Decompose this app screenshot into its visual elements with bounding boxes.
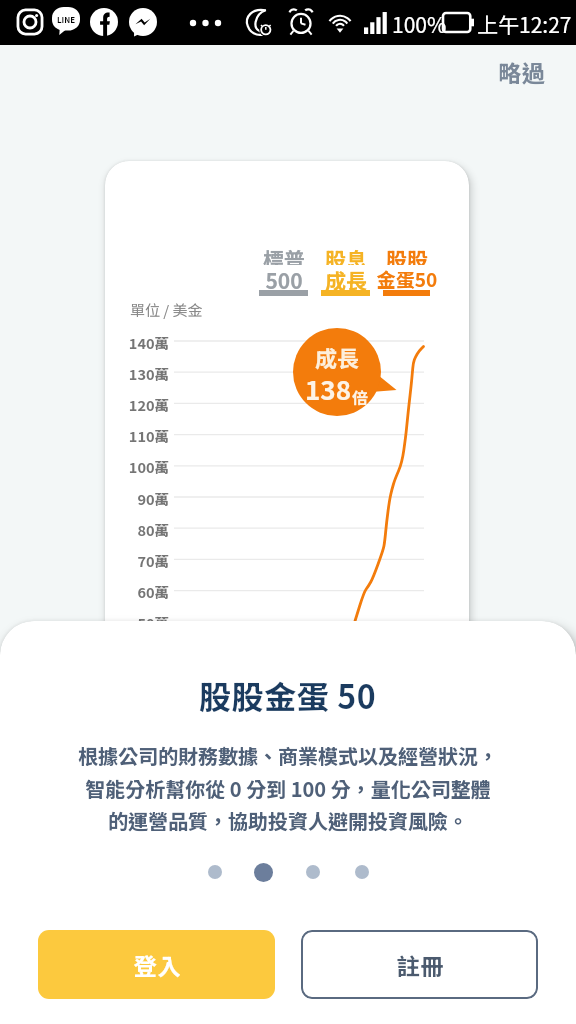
staticText: 110萬 <box>107 425 169 446</box>
staticText: 140萬 <box>107 332 169 353</box>
staticText: LINE <box>57 14 76 26</box>
staticText: 股息 <box>291 244 401 265</box>
staticText: 90萬 <box>107 488 169 509</box>
staticText: 成長 <box>291 265 401 290</box>
button[interactable]: 略過 <box>490 48 553 95</box>
staticText: 500 <box>229 265 339 290</box>
staticText: 註冊 <box>396 948 444 981</box>
staticText: 成長 <box>292 341 382 373</box>
staticText: 倍 <box>352 385 369 408</box>
staticText: 70萬 <box>107 550 169 571</box>
staticText: 120萬 <box>107 394 169 415</box>
staticText: 略過 <box>498 55 545 88</box>
button[interactable]: 註冊 <box>301 930 538 999</box>
button[interactable]: Page indicator <box>355 865 369 879</box>
staticText: 根據公司的財務數據、商業模式以及經營狀況， 智能分析幫你從 0 分到 100 分… <box>78 741 498 835</box>
button[interactable]: Page indicator <box>208 865 222 879</box>
staticText: 60萬 <box>107 581 169 602</box>
staticText: 股股 <box>352 244 462 265</box>
staticText: 單位 / 美金 <box>130 299 203 321</box>
staticText: 上午12:27 <box>477 9 572 39</box>
staticText: 100萬 <box>107 456 169 477</box>
button[interactable]: 登入 <box>38 930 275 999</box>
staticText: 股股金蛋 50 <box>199 672 377 718</box>
staticText: 80萬 <box>107 519 169 540</box>
staticText: 138 <box>305 370 352 408</box>
staticText: 標普 <box>229 244 339 265</box>
staticText: 50萬 <box>107 612 169 633</box>
staticText: 金蛋50 <box>352 265 462 290</box>
staticText: 登入 <box>133 948 181 981</box>
button[interactable]: Page 2, current <box>254 863 273 882</box>
staticText: 100% <box>392 9 447 39</box>
button[interactable]: Page indicator <box>306 865 320 879</box>
staticText: 130萬 <box>107 363 169 384</box>
